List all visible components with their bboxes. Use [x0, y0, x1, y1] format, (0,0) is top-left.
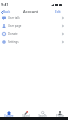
- staticText: Account: [23, 9, 39, 14]
- staticText: Search: [38, 114, 47, 118]
- button[interactable]: User page: [0, 22, 68, 30]
- staticText: Profile: [56, 114, 64, 118]
- staticText: Donate: [8, 32, 18, 36]
- staticText: 9:41: [1, 2, 9, 7]
- staticText: User talk: [8, 16, 20, 20]
- staticText: Explore: [4, 114, 14, 118]
- staticText: Back: [3, 10, 11, 14]
- button[interactable]: Back: [0, 10, 12, 14]
- staticText: User page: [8, 24, 22, 28]
- button[interactable]: Explore: [0, 107, 17, 117]
- button[interactable]: Saved: [17, 107, 34, 117]
- button[interactable]: Edit: [55, 10, 68, 14]
- button[interactable]: Settings: [0, 38, 68, 46]
- button[interactable]: Donate: [0, 30, 68, 38]
- staticText: Settings: [8, 40, 19, 44]
- button[interactable]: Search: [34, 107, 51, 117]
- button[interactable]: User talk: [0, 14, 68, 22]
- staticText: Saved: [22, 114, 30, 118]
- button[interactable]: Profile: [51, 107, 68, 117]
